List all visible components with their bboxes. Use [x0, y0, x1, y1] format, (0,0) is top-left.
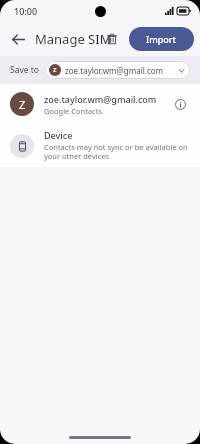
staticText: Device	[44, 129, 73, 141]
button[interactable]: Z	[45, 61, 190, 79]
button[interactable]: Device	[0, 124, 200, 167]
staticText: Google Contacts	[44, 106, 102, 116]
button[interactable]: Delete	[99, 26, 125, 52]
button[interactable]: Back	[4, 25, 32, 53]
staticText: 10:00	[14, 5, 38, 17]
staticText: Manage SIM	[35, 30, 112, 48]
staticText: zoe.taylor.wm@gmail.com	[65, 65, 177, 76]
button[interactable]: Z	[0, 84, 200, 124]
staticText: Z	[53, 66, 57, 74]
staticText: Z	[19, 97, 26, 112]
button[interactable]: Import	[129, 27, 194, 51]
staticText: zoe.taylor.wm@gmail.com	[44, 93, 157, 105]
staticText: Contacts may not sync or be available on…	[44, 142, 190, 162]
staticText: Save to	[10, 64, 39, 76]
button[interactable]: Info	[170, 94, 190, 114]
staticText: Import	[146, 33, 177, 45]
